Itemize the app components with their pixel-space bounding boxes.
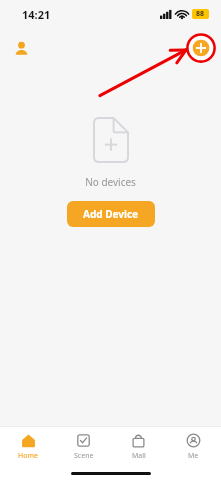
staticText: 14:21 [22, 7, 51, 22]
button[interactable]: Scene [56, 427, 111, 467]
staticText: Home [18, 451, 38, 461]
button[interactable]: Mall [111, 427, 166, 467]
button[interactable]: Add [184, 31, 218, 65]
button[interactable]: Add Device [67, 201, 155, 227]
button[interactable]: Me [166, 427, 221, 467]
staticText: Add Device [83, 207, 139, 221]
staticText: Me [188, 451, 199, 461]
button[interactable]: Profile [9, 36, 33, 60]
button[interactable]: Home [0, 427, 56, 467]
staticText: 88 [196, 9, 205, 19]
staticText: Mall [132, 451, 146, 461]
staticText: No devices [85, 175, 136, 189]
staticText: Scene [74, 451, 94, 461]
